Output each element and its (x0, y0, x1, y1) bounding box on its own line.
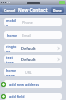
staticText: Phone (22, 20, 33, 25)
button[interactable]: mobile (4, 18, 62, 26)
other: Open (57, 47, 60, 50)
other: Add (1, 82, 6, 87)
button[interactable]: home page (4, 68, 62, 76)
staticText: Done (53, 8, 62, 13)
staticText: add field (9, 94, 25, 99)
staticText: home page (6, 68, 21, 76)
button[interactable]: home (4, 31, 62, 39)
staticText: add new address (9, 82, 40, 87)
staticText: Default (21, 46, 36, 51)
button[interactable]: Cancel (2, 7, 18, 13)
staticText: URL (25, 70, 32, 75)
staticText: text tone (6, 55, 18, 63)
staticText: New Contact (18, 7, 48, 13)
staticText: home (7, 33, 18, 38)
button[interactable]: Add (0, 93, 66, 100)
staticText: mobile (6, 18, 18, 26)
staticText: ringtone (6, 44, 18, 52)
staticText: Cancel (4, 8, 16, 13)
other: Add (1, 94, 6, 99)
staticText: Email (22, 33, 32, 38)
button[interactable]: text tone (4, 55, 62, 63)
other: Open (57, 58, 60, 61)
staticText: Default (21, 57, 36, 62)
button[interactable]: Done (51, 7, 64, 13)
button[interactable]: Add (0, 80, 66, 88)
button[interactable]: ringtone (4, 44, 62, 52)
